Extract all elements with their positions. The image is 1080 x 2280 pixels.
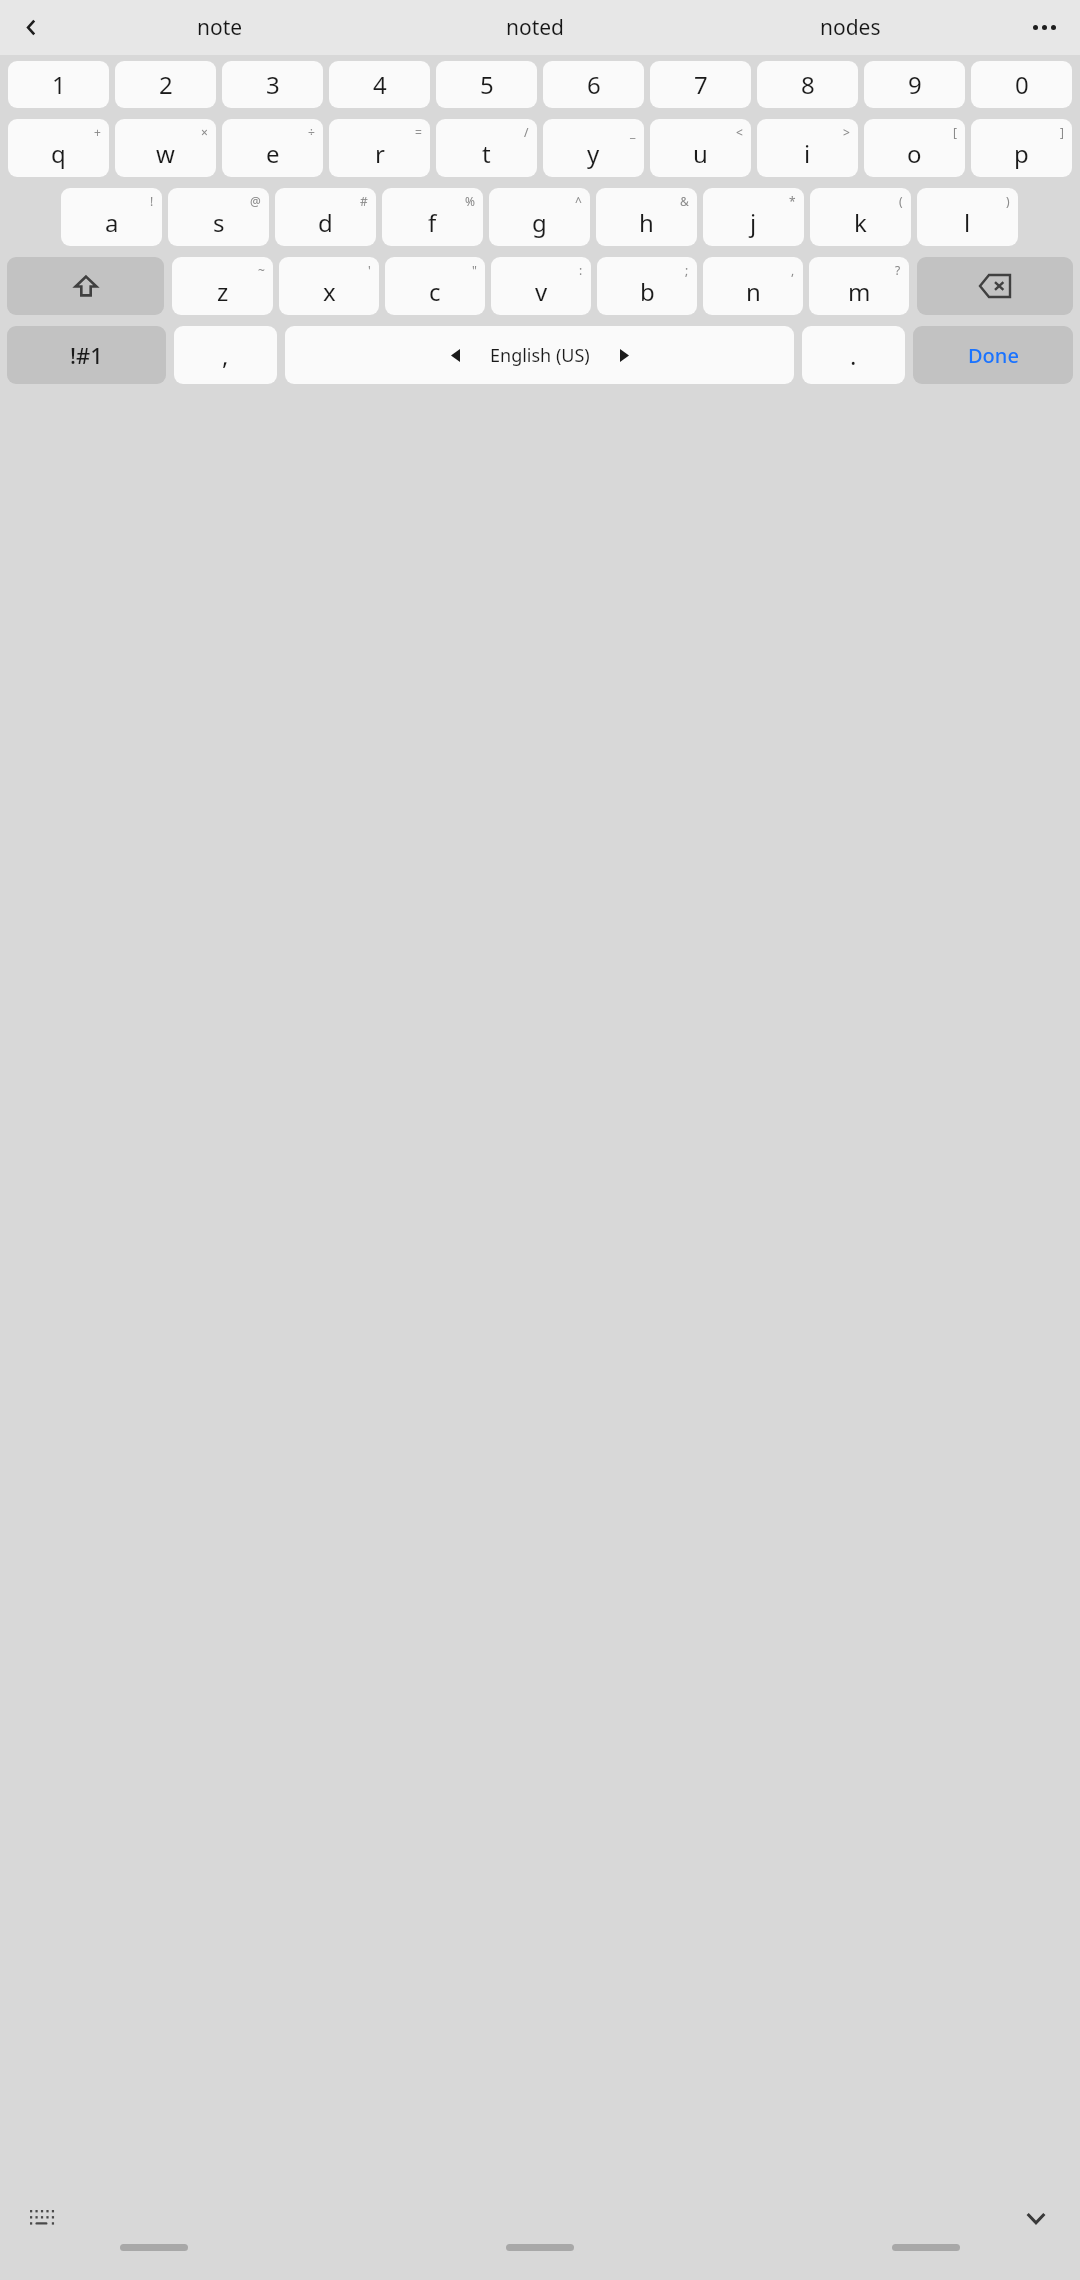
button[interactable]: ; — [597, 257, 697, 315]
staticText: Manage folders — [70, 16, 255, 50]
staticText: & — [680, 193, 689, 209]
button[interactable] — [120, 2244, 188, 2251]
staticText: g — [532, 206, 547, 239]
button[interactable]: = — [329, 119, 430, 177]
staticText: k — [854, 206, 867, 239]
staticText: + — [94, 124, 101, 140]
button[interactable]: Previous suggestions — [0, 0, 62, 55]
staticText: Folders — [78, 20, 1043, 50]
staticText: × — [201, 124, 208, 140]
button[interactable]: 0 — [971, 61, 1072, 108]
button[interactable]: 4 — [329, 61, 430, 108]
button[interactable]: ~ — [172, 257, 273, 315]
button[interactable]: < — [650, 119, 751, 177]
button[interactable]: Hide keyboard — [1016, 2198, 1056, 2238]
button[interactable]: + — [8, 119, 109, 177]
button[interactable]: 7 — [650, 61, 751, 108]
button[interactable]: " — [385, 257, 485, 315]
button[interactable]: 8 — [757, 61, 858, 108]
staticText: ~ — [258, 262, 265, 278]
button[interactable]: ÷ — [222, 119, 323, 177]
button[interactable]: > — [757, 119, 858, 177]
staticText: s — [213, 206, 225, 239]
button[interactable]: noted — [378, 0, 693, 55]
button[interactable] — [892, 2244, 960, 2251]
staticText: ( — [899, 193, 903, 209]
button[interactable]: ^ — [489, 188, 590, 246]
staticText: > — [843, 124, 850, 140]
button[interactable]: note — [62, 0, 378, 55]
button[interactable]: . — [802, 326, 905, 384]
button[interactable]: 5 — [436, 61, 537, 108]
button[interactable]: * — [703, 188, 804, 246]
staticText: . — [850, 339, 857, 372]
staticText: ] — [1060, 124, 1064, 140]
button[interactable]: 6 — [543, 61, 644, 108]
button[interactable]: / — [436, 119, 537, 177]
button[interactable]: Symbols — [7, 326, 166, 384]
button[interactable]: Shift — [7, 257, 164, 315]
staticText: , — [222, 339, 229, 372]
staticText: noted — [506, 13, 565, 42]
staticText: 4 — [373, 68, 387, 101]
button[interactable]: ? — [809, 257, 909, 315]
button[interactable]: ' — [279, 257, 379, 315]
button[interactable] — [506, 2244, 574, 2251]
button[interactable]: : — [491, 257, 591, 315]
staticText: 18:13 — [16, 4, 57, 26]
staticText: < — [736, 124, 743, 140]
button[interactable]: 9 — [864, 61, 965, 108]
staticText: c — [429, 275, 441, 308]
button[interactable]: Done — [913, 326, 1073, 384]
staticText: u — [693, 137, 708, 170]
button[interactable]: Backspace — [917, 257, 1073, 315]
button[interactable]: , — [703, 257, 803, 315]
button[interactable]: ] — [971, 119, 1072, 177]
button[interactable]: 3 — [222, 61, 323, 108]
button[interactable]: 2 — [115, 61, 216, 108]
staticText: f — [428, 206, 437, 239]
button[interactable]: Back — [16, 11, 60, 55]
button[interactable]: × — [115, 119, 216, 177]
button[interactable]: nodes — [693, 0, 1008, 55]
staticText: 5 — [480, 68, 494, 101]
staticText: Done — [968, 342, 1019, 369]
button[interactable]: @ — [168, 188, 269, 246]
button[interactable]: _ — [543, 119, 644, 177]
staticText: o — [907, 137, 922, 170]
staticText: h — [639, 206, 654, 239]
button[interactable]: Keyboard settings — [26, 2201, 60, 2235]
staticText: English (US) — [490, 343, 590, 368]
staticText: !#1 — [70, 340, 103, 370]
button[interactable]: Folders — [6, 0, 1074, 70]
button[interactable]: , — [174, 326, 277, 384]
staticText: x — [323, 275, 336, 308]
button[interactable]: & — [596, 188, 697, 246]
button[interactable]: More suggestions — [1008, 0, 1080, 55]
staticText: 9 — [908, 68, 922, 101]
staticText: ' — [368, 262, 371, 278]
button[interactable]: % — [382, 188, 483, 246]
staticText: 1 — [1043, 22, 1054, 48]
button[interactable]: ( — [810, 188, 911, 246]
staticText: " — [472, 262, 477, 278]
button[interactable]: [ — [864, 119, 965, 177]
button[interactable]: 1 — [8, 61, 109, 108]
staticText: v — [535, 275, 548, 308]
staticText: i — [804, 137, 811, 170]
staticText: ; — [685, 262, 689, 278]
button[interactable]: Add folder — [6, 71, 1074, 141]
staticText: a — [105, 206, 119, 239]
button[interactable]: ) — [917, 188, 1018, 246]
staticText: z — [217, 275, 229, 308]
button[interactable]: # — [275, 188, 376, 246]
staticText: 0 — [1015, 68, 1029, 101]
button[interactable]: ! — [61, 188, 162, 246]
staticText: Add folder — [78, 91, 187, 121]
button[interactable]: English (US) — [285, 326, 794, 384]
staticText: _ — [630, 124, 636, 140]
